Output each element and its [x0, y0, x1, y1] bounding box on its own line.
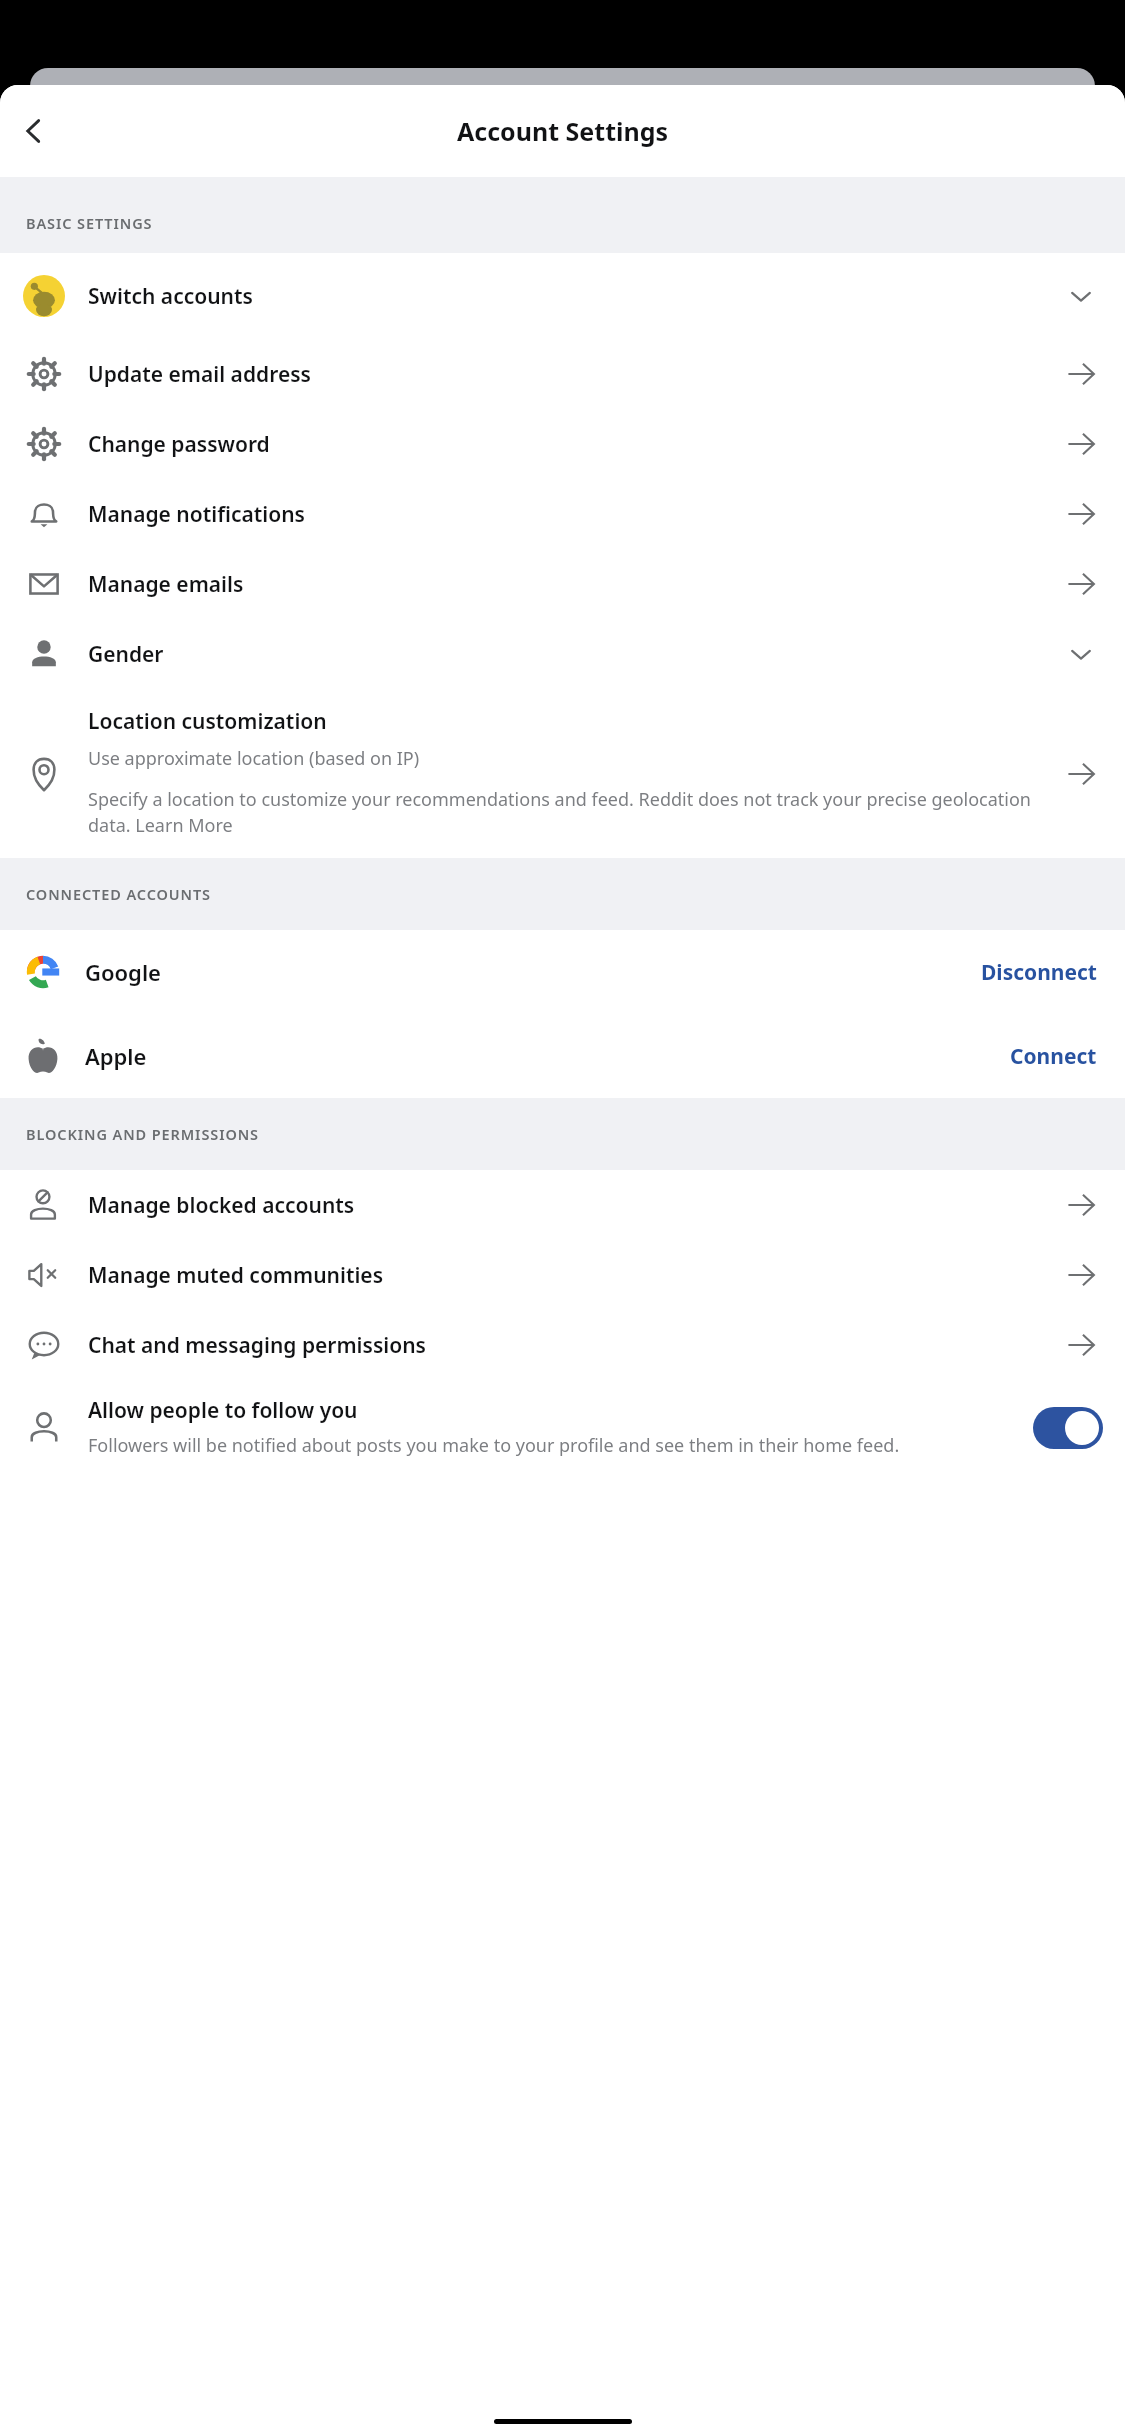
staticText: CONNECTED ACCOUNTS: [26, 884, 211, 904]
staticText: Change password: [88, 430, 1037, 459]
staticText: Manage muted communities: [88, 1261, 1037, 1290]
button[interactable]: Manage muted communities: [0, 1240, 1125, 1310]
staticText: Location customization: [88, 707, 327, 736]
button[interactable]: Location customization: [0, 689, 1125, 858]
button[interactable]: Update email address: [0, 339, 1125, 409]
button[interactable]: Switch accounts: [0, 253, 1125, 339]
button[interactable]: Chat and messaging permissions: [0, 1310, 1125, 1380]
staticText: Manage notifications: [88, 500, 1037, 529]
staticText: Manage emails: [88, 570, 1037, 599]
staticText: Account Settings: [457, 114, 669, 148]
staticText: Specify a location to customize your rec…: [88, 787, 1031, 838]
staticText: Apple: [85, 1041, 1010, 1071]
button[interactable]: Manage emails: [0, 549, 1125, 619]
button[interactable]: Apple: [0, 1014, 1125, 1098]
button[interactable]: Allow people to follow you: [0, 1380, 1125, 1476]
button[interactable]: Change password: [0, 409, 1125, 479]
staticText: Chat and messaging permissions: [88, 1331, 1037, 1360]
staticText: Connect: [1010, 1042, 1097, 1071]
staticText: BASIC SETTINGS: [26, 213, 153, 233]
button[interactable]: Google: [0, 930, 1125, 1014]
staticText: Followers will be notified about posts y…: [88, 1433, 900, 1458]
staticText: Use approximate location (based on IP): [88, 746, 420, 771]
button[interactable]: Manage notifications: [0, 479, 1125, 549]
staticText: Update email address: [88, 360, 1037, 389]
staticText: Gender: [88, 640, 1037, 669]
button[interactable]: Allow people to follow you toggle: [1033, 1407, 1103, 1449]
staticText: Manage blocked accounts: [88, 1191, 1037, 1220]
staticText: BLOCKING AND PERMISSIONS: [26, 1124, 259, 1144]
staticText: Google: [85, 957, 981, 987]
button[interactable]: Back: [4, 101, 64, 161]
staticText: Switch accounts: [88, 282, 1037, 311]
button[interactable]: Manage blocked accounts: [0, 1170, 1125, 1240]
staticText: Allow people to follow you: [88, 1396, 358, 1425]
button[interactable]: Gender: [0, 619, 1125, 689]
staticText: Disconnect: [981, 958, 1097, 987]
